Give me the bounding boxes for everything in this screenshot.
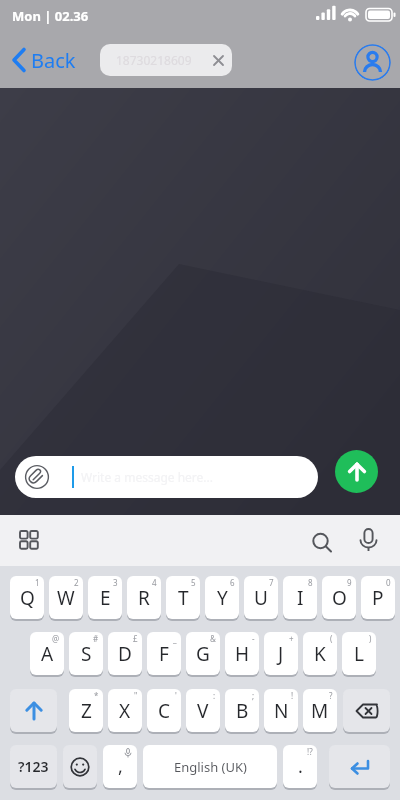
- staticText: 8: [308, 577, 313, 588]
- staticText: 6: [230, 577, 235, 588]
- staticText: E: [100, 585, 111, 611]
- staticText: ": [134, 690, 138, 701]
- button[interactable]: L: [342, 632, 376, 675]
- button[interactable]: Y: [205, 576, 239, 619]
- staticText: @: [52, 633, 60, 644]
- staticText: ': [175, 690, 177, 701]
- button[interactable]: ?123: [10, 745, 57, 788]
- staticText: 1: [35, 577, 40, 588]
- button[interactable]: ,: [103, 745, 137, 788]
- button[interactable]: [10, 689, 57, 732]
- button[interactable]: .: [283, 745, 317, 788]
- staticText: N: [274, 698, 289, 724]
- button[interactable]: H: [225, 632, 259, 675]
- button[interactable]: Write a message here...: [15, 456, 318, 498]
- staticText: 7: [269, 577, 274, 588]
- button[interactable]: F: [147, 632, 181, 675]
- button[interactable]: K: [303, 632, 337, 675]
- staticText: -: [252, 633, 255, 644]
- button[interactable]: [329, 745, 390, 788]
- button[interactable]: [343, 689, 390, 732]
- staticText: K: [314, 641, 326, 667]
- button[interactable]: 18730218609: [100, 44, 232, 76]
- button[interactable]: Back: [10, 44, 76, 76]
- button[interactable]: S: [69, 632, 103, 675]
- button[interactable]: [306, 527, 338, 559]
- button[interactable]: D: [108, 632, 142, 675]
- staticText: ): [369, 633, 372, 644]
- staticText: U: [254, 585, 268, 611]
- button[interactable]: G: [186, 632, 220, 675]
- staticText: X: [119, 698, 131, 724]
- staticText: C: [158, 698, 171, 724]
- staticText: M: [311, 698, 329, 724]
- button[interactable]: W: [49, 576, 83, 619]
- button[interactable]: T: [166, 576, 200, 619]
- button[interactable]: R: [127, 576, 161, 619]
- staticText: _: [173, 633, 177, 644]
- button[interactable]: [14, 528, 44, 558]
- staticText: ?123: [18, 757, 49, 776]
- staticText: 2: [74, 577, 79, 588]
- button[interactable]: [352, 525, 384, 557]
- staticText: 3: [113, 577, 118, 588]
- staticText: W: [57, 585, 75, 611]
- button[interactable]: V: [186, 689, 220, 732]
- staticText: D: [118, 641, 132, 667]
- staticText: (: [330, 633, 333, 644]
- staticText: Back: [31, 47, 76, 74]
- staticText: J: [278, 641, 284, 667]
- button[interactable]: [335, 450, 378, 493]
- staticText: !?: [307, 746, 313, 757]
- staticText: Q: [20, 585, 35, 611]
- button[interactable]: N: [264, 689, 298, 732]
- staticText: Z: [81, 698, 92, 724]
- staticText: F: [159, 641, 169, 667]
- staticText: R: [138, 585, 150, 611]
- staticText: B: [236, 698, 249, 724]
- staticText: ?: [329, 690, 333, 701]
- button[interactable]: Q: [10, 576, 44, 619]
- staticText: !: [291, 690, 294, 701]
- button[interactable]: [63, 745, 97, 788]
- staticText: &: [210, 633, 216, 644]
- staticText: V: [197, 698, 209, 724]
- button[interactable]: Z: [69, 689, 103, 732]
- button[interactable]: U: [244, 576, 278, 619]
- staticText: Y: [217, 585, 228, 611]
- button[interactable]: P: [361, 576, 395, 619]
- staticText: *: [94, 690, 99, 701]
- staticText: 0: [386, 577, 391, 588]
- button[interactable]: O: [322, 576, 356, 619]
- button[interactable]: C: [147, 689, 181, 732]
- button[interactable]: J: [264, 632, 298, 675]
- staticText: English (UK): [174, 758, 247, 776]
- staticText: 18730218609: [116, 52, 192, 68]
- staticText: I: [297, 585, 304, 611]
- staticText: P: [372, 585, 384, 611]
- staticText: Write a message here...: [81, 469, 213, 485]
- button[interactable]: E: [88, 576, 122, 619]
- staticText: £: [133, 633, 138, 644]
- staticText: G: [196, 641, 210, 667]
- staticText: O: [332, 585, 347, 611]
- staticText: T: [178, 585, 189, 611]
- staticText: L: [354, 641, 364, 667]
- staticText: 4: [152, 577, 157, 588]
- staticText: .: [298, 754, 303, 779]
- button[interactable]: X: [108, 689, 142, 732]
- button[interactable]: I: [283, 576, 317, 619]
- staticText: Mon | 02.36: [12, 7, 89, 25]
- button[interactable]: [354, 44, 391, 81]
- staticText: :: [213, 690, 216, 701]
- staticText: #: [93, 633, 99, 644]
- button[interactable]: B: [225, 689, 259, 732]
- staticText: ;: [252, 690, 255, 701]
- staticText: S: [81, 641, 92, 667]
- button[interactable]: A: [30, 632, 64, 675]
- button[interactable]: M: [303, 689, 337, 732]
- staticText: 9: [347, 577, 352, 588]
- staticText: A: [41, 641, 54, 667]
- staticText: +: [289, 633, 294, 644]
- button[interactable]: English (UK): [143, 745, 277, 788]
